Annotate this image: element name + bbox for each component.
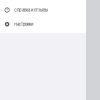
button[interactable]: Настройки	[0, 17, 86, 31]
button[interactable]: ?	[0, 3, 86, 17]
staticText: Справка и отзывы	[14, 7, 48, 12]
staticText: ?	[6, 8, 8, 12]
staticText: Настройки	[14, 22, 33, 27]
